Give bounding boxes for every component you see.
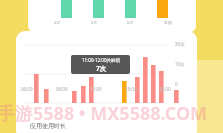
staticText: 10次 [175,61,185,67]
staticText: 11:00-12:00共解锁 [82,57,120,63]
staticText: 20次 [175,41,185,47]
button[interactable]: 20次 [16,31,197,125]
button[interactable]: Monthly usage chart [28,0,196,32]
staticText: 应用使用时长 [30,122,66,130]
button[interactable]: 应用使用时长 [16,118,197,133]
staticText: 23:00 [159,86,171,92]
staticText: 12:00 [90,86,102,92]
button[interactable]: 11:00-12:00共解锁 [71,55,130,74]
staticText: 18:00 [125,86,137,92]
staticText: 0 [175,81,178,87]
staticText: 5月 [91,20,98,25]
staticText: 7次 [96,64,107,73]
staticText: 本周 [164,20,172,25]
staticText: 手游5588 • MX5588.COM [0,101,208,126]
staticText: 06:00 [56,86,68,92]
staticText: 06:00 [21,86,33,92]
staticText: 6月 [127,20,134,25]
staticText: 4月 [54,20,61,25]
